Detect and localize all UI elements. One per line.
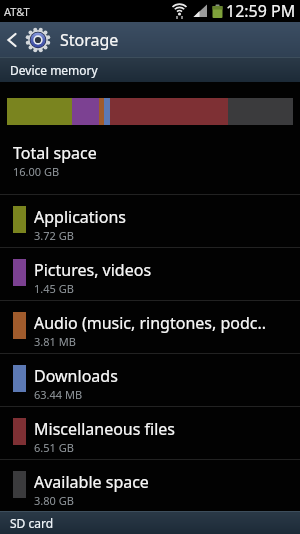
button[interactable]: Storage	[0, 22, 300, 57]
button[interactable]: Applications	[0, 195, 300, 247]
staticText: SD card	[10, 515, 54, 531]
staticText: Applications	[34, 206, 126, 228]
staticText: 6.51 GB	[34, 440, 74, 455]
staticText: Audio (music, ringtones, podc..	[34, 312, 267, 334]
staticText: 12:59 PM	[226, 0, 296, 22]
staticText: 3.80 GB	[34, 493, 74, 508]
staticText: Device memory	[10, 62, 98, 78]
staticText: Downloads	[34, 365, 118, 387]
staticText: Storage	[60, 29, 119, 51]
staticText: 16.00 GB	[13, 164, 60, 179]
staticText: Total space	[13, 142, 97, 164]
staticText: Miscellaneous files	[34, 418, 175, 440]
staticText: 1.45 GB	[34, 281, 74, 296]
button[interactable]: Total space	[13, 142, 300, 194]
staticText: 3.72 GB	[34, 228, 74, 243]
staticText: AT&T	[4, 4, 30, 19]
staticText: 3.81 MB	[34, 334, 76, 349]
button[interactable]: Miscellaneous files	[0, 407, 300, 459]
button[interactable]: Pictures, videos	[0, 248, 300, 300]
button[interactable]: Available space	[0, 460, 300, 511]
button[interactable]: Downloads	[0, 354, 300, 406]
staticText: 63.44 MB	[34, 387, 83, 402]
staticText: Pictures, videos	[34, 259, 152, 281]
staticText: Available space	[34, 471, 149, 493]
button[interactable]: Audio (music, ringtones, podc..	[0, 301, 300, 353]
